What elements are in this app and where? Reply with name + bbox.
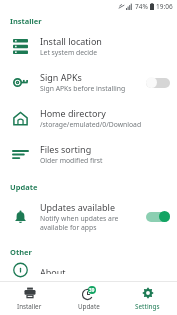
staticText: Let system decide [40, 48, 98, 57]
staticText: Sign APKs [40, 71, 82, 83]
button[interactable]: Home directory [0, 100, 177, 136]
button[interactable]: Updates available toggle, on [146, 211, 170, 222]
staticText: /storage/emulated/0/Download [40, 120, 142, 129]
button[interactable]: Sign APKs toggle, off [146, 77, 170, 88]
staticText: Other [10, 247, 32, 257]
staticText: Installer [10, 16, 42, 26]
button[interactable]: Sign APKs [0, 64, 177, 100]
staticText: 39 [89, 287, 95, 293]
staticText: 74% [135, 2, 148, 11]
button[interactable]: Updates available [0, 194, 177, 239]
button[interactable]: Installer [0, 282, 59, 315]
staticText: Home directory [40, 107, 106, 119]
button[interactable]: Install location [0, 28, 177, 64]
button[interactable]: Settings [118, 282, 177, 315]
staticText: Older modified first [40, 156, 103, 165]
staticText: Updates available [40, 201, 115, 213]
staticText: 19:06 [156, 2, 173, 11]
staticText: Files sorting [40, 143, 92, 155]
button[interactable]: Files sorting [0, 136, 177, 172]
staticText: Update [10, 182, 38, 192]
staticText: Update [78, 302, 100, 311]
staticText: Sign APKs before installing [40, 84, 126, 93]
button[interactable]: 39 [59, 282, 118, 315]
staticText: Installer [17, 302, 42, 311]
staticText: Install location [40, 35, 102, 47]
staticText: Settings [135, 302, 160, 311]
staticText: Notify when updates are available for ap… [40, 214, 119, 232]
button[interactable]: About [0, 259, 177, 281]
staticText: About [40, 266, 66, 274]
